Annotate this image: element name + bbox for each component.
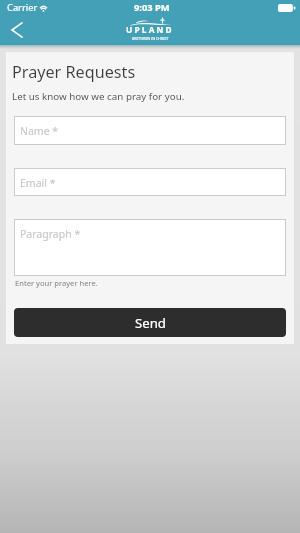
staticText: Let us know how we can pray for you. xyxy=(12,90,185,103)
button[interactable]: Send xyxy=(14,308,286,337)
staticText: Email * xyxy=(20,176,56,190)
staticText: 9:03 PM xyxy=(134,1,170,14)
staticText: Carrier xyxy=(7,1,38,14)
staticText: BRETHREN IN CHRIST xyxy=(132,36,169,41)
staticText: UPLAND xyxy=(126,24,174,35)
button[interactable]: Back xyxy=(1,15,33,45)
staticText: Prayer Requests xyxy=(12,61,136,83)
staticText: Enter your prayer here. xyxy=(15,278,98,288)
staticText: Paragraph * xyxy=(20,227,81,241)
staticText: Send xyxy=(135,314,166,332)
button[interactable]: Name * xyxy=(14,116,286,145)
staticText: Name * xyxy=(20,124,59,138)
button[interactable]: Email * xyxy=(14,168,286,196)
button[interactable]: Paragraph * xyxy=(14,219,286,276)
